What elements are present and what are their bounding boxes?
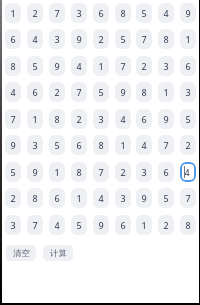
- button[interactable]: 5: [93, 82, 109, 102]
- button[interactable]: 8: [5, 56, 21, 76]
- button[interactable]: 1: [115, 135, 131, 155]
- button[interactable]: 7: [180, 188, 196, 208]
- button[interactable]: 9: [5, 135, 21, 155]
- button[interactable]: 7: [49, 3, 65, 23]
- button[interactable]: 6: [27, 82, 43, 102]
- button[interactable]: 9: [115, 82, 131, 102]
- button[interactable]: 计算: [43, 245, 73, 261]
- button[interactable]: 3: [71, 3, 87, 23]
- button[interactable]: 4: [27, 29, 43, 49]
- button[interactable]: 3: [49, 29, 65, 49]
- button[interactable]: 9: [158, 109, 174, 129]
- staticText: 6: [76, 139, 82, 151]
- button[interactable]: 3: [180, 82, 196, 102]
- button[interactable]: 2: [71, 109, 87, 129]
- button[interactable]: 8: [180, 215, 196, 235]
- button[interactable]: 5: [136, 3, 152, 23]
- button[interactable]: 4: [93, 188, 109, 208]
- button[interactable]: 8: [158, 29, 174, 49]
- button[interactable]: 1: [180, 29, 196, 49]
- button[interactable]: 1: [158, 82, 174, 102]
- staticText: 7: [76, 86, 82, 98]
- button[interactable]: 6: [115, 215, 131, 235]
- button[interactable]: 9: [27, 162, 43, 182]
- staticText: 1: [32, 113, 38, 125]
- button[interactable]: 6: [158, 162, 174, 182]
- button[interactable]: 6: [49, 188, 65, 208]
- staticText: 5: [10, 166, 16, 178]
- button[interactable]: 2: [49, 82, 65, 102]
- button[interactable]: 3: [93, 109, 109, 129]
- staticText: 8: [141, 86, 147, 98]
- button[interactable]: 9: [71, 29, 87, 49]
- staticText: 5: [54, 139, 60, 151]
- button[interactable]: 4: [5, 82, 21, 102]
- staticText: 4: [98, 192, 104, 204]
- staticText: 4: [141, 139, 147, 151]
- button[interactable]: 4: [49, 215, 65, 235]
- button[interactable]: 4: [158, 3, 174, 23]
- button[interactable]: 9: [180, 3, 196, 23]
- staticText: 3: [185, 86, 191, 98]
- button[interactable]: 4: [136, 135, 152, 155]
- button[interactable]: 3: [115, 188, 131, 208]
- button[interactable]: 7: [158, 135, 174, 155]
- button[interactable]: 6: [5, 29, 21, 49]
- button[interactable]: 2: [115, 162, 131, 182]
- button[interactable]: 8: [49, 109, 65, 129]
- button[interactable]: 6: [180, 56, 196, 76]
- button[interactable]: 2: [180, 135, 196, 155]
- button[interactable]: 1: [93, 56, 109, 76]
- button[interactable]: 3: [5, 215, 21, 235]
- button[interactable]: 9: [136, 188, 152, 208]
- button[interactable]: 1: [49, 162, 65, 182]
- button[interactable]: 5: [180, 109, 196, 129]
- button[interactable]: 3: [136, 162, 152, 182]
- staticText: 6: [32, 86, 38, 98]
- button[interactable]: 7: [136, 29, 152, 49]
- button[interactable]: 5: [158, 188, 174, 208]
- button[interactable]: 3: [27, 135, 43, 155]
- button[interactable]: 5: [115, 29, 131, 49]
- staticText: 5: [120, 33, 126, 45]
- button[interactable]: 6: [93, 3, 109, 23]
- button[interactable]: 3: [158, 56, 174, 76]
- button[interactable]: 1: [5, 3, 21, 23]
- button[interactable]: 7: [115, 56, 131, 76]
- staticText: 5: [98, 86, 104, 98]
- staticText: 1: [76, 192, 82, 204]
- button[interactable]: 5: [27, 56, 43, 76]
- button[interactable]: 2: [136, 56, 152, 76]
- button[interactable]: 7: [27, 215, 43, 235]
- button[interactable]: 4: [115, 109, 131, 129]
- button[interactable]: 6: [71, 135, 87, 155]
- button[interactable]: 2: [5, 188, 21, 208]
- button[interactable]: 5: [71, 215, 87, 235]
- staticText: 4: [184, 166, 190, 178]
- button[interactable]: 7: [93, 162, 109, 182]
- button[interactable]: 8: [93, 135, 109, 155]
- button[interactable]: 2: [27, 3, 43, 23]
- button[interactable]: 8: [71, 162, 87, 182]
- button[interactable]: 7: [71, 82, 87, 102]
- button[interactable]: 8: [27, 188, 43, 208]
- staticText: 5: [76, 219, 82, 231]
- button[interactable]: 6: [136, 109, 152, 129]
- button[interactable]: 1: [136, 215, 152, 235]
- button[interactable]: 2: [93, 29, 109, 49]
- button[interactable]: 7: [5, 109, 21, 129]
- staticText: 2: [54, 86, 60, 98]
- button[interactable]: 4: [180, 162, 196, 182]
- button[interactable]: 2: [158, 215, 174, 235]
- button[interactable]: 1: [71, 188, 87, 208]
- button[interactable]: 5: [5, 162, 21, 182]
- button[interactable]: 9: [93, 215, 109, 235]
- button[interactable]: 1: [27, 109, 43, 129]
- button[interactable]: 4: [71, 56, 87, 76]
- button[interactable]: 8: [136, 82, 152, 102]
- button[interactable]: 5: [49, 135, 65, 155]
- button[interactable]: 清空: [6, 245, 36, 261]
- staticText: 9: [10, 139, 16, 151]
- button[interactable]: 9: [49, 56, 65, 76]
- button[interactable]: 8: [115, 3, 131, 23]
